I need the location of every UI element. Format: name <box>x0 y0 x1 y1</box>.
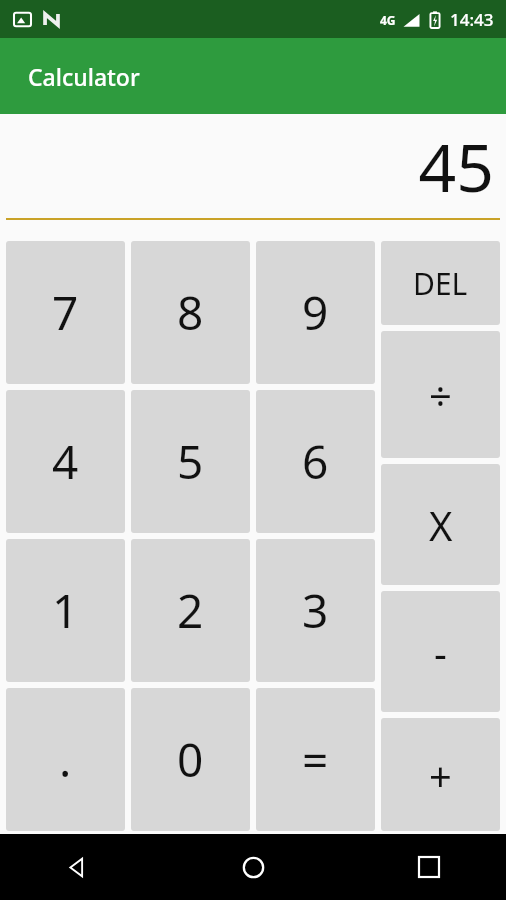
staticText: 3 <box>302 579 329 642</box>
button[interactable]: . <box>6 688 125 831</box>
staticText: + <box>429 748 452 802</box>
button[interactable]: 3 <box>256 539 375 682</box>
button[interactable]: 1 <box>6 539 125 682</box>
staticText: 9 <box>302 281 329 344</box>
staticText: ÷ <box>429 368 452 422</box>
button[interactable]: 0 <box>131 688 250 831</box>
button[interactable]: 4 <box>6 390 125 533</box>
button[interactable]: Recent apps <box>406 844 452 890</box>
staticText: - <box>434 625 447 679</box>
button[interactable]: 2 <box>131 539 250 682</box>
button[interactable]: X <box>381 464 500 585</box>
button[interactable]: 5 <box>131 390 250 533</box>
button[interactable]: 6 <box>256 390 375 533</box>
staticText: 45 <box>418 121 494 211</box>
staticText: 2 <box>177 579 204 642</box>
staticText: . <box>59 728 72 791</box>
button[interactable]: 8 <box>131 241 250 384</box>
staticText: 6 <box>302 430 329 493</box>
staticText: = <box>302 728 329 791</box>
staticText: 5 <box>177 430 204 493</box>
staticText: 14:43 <box>450 8 494 31</box>
button[interactable]: 7 <box>6 241 125 384</box>
button[interactable]: DEL <box>381 241 500 325</box>
staticText: 4 <box>52 430 79 493</box>
button[interactable]: Home <box>230 844 276 890</box>
staticText: 8 <box>177 281 204 344</box>
staticText: 4G <box>380 12 396 28</box>
staticText: DEL <box>413 263 468 304</box>
button[interactable]: - <box>381 591 500 712</box>
button[interactable]: + <box>381 718 500 831</box>
button[interactable]: Back <box>54 844 100 890</box>
staticText: Calculator <box>28 61 140 92</box>
button[interactable]: ÷ <box>381 331 500 458</box>
button[interactable]: = <box>256 688 375 831</box>
staticText: 0 <box>177 728 204 791</box>
staticText: 7 <box>52 281 79 344</box>
staticText: 1 <box>52 579 79 642</box>
staticText: X <box>429 498 453 552</box>
button[interactable]: 9 <box>256 241 375 384</box>
